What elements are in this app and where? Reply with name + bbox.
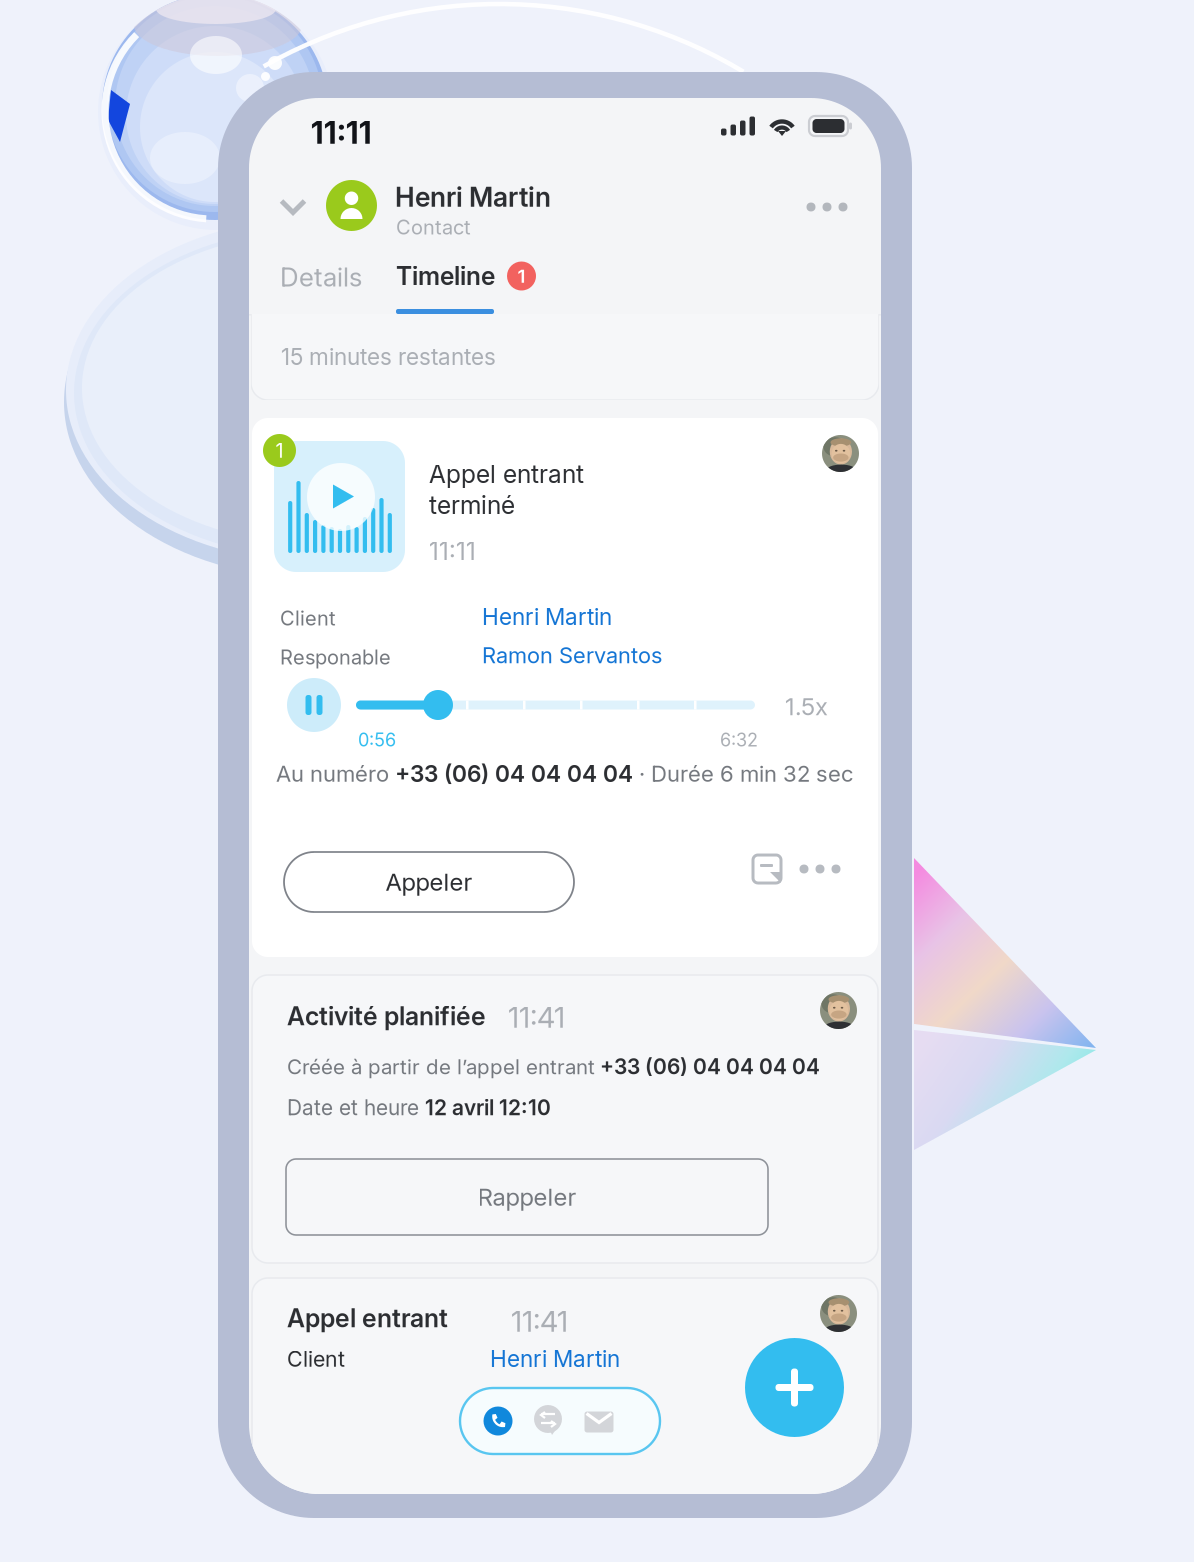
staticText: Durée 6 min 32 sec bbox=[651, 760, 853, 787]
staticText: 1 bbox=[517, 265, 525, 287]
button[interactable]: Réduire bbox=[269, 182, 317, 232]
staticText: Activité planifiée bbox=[287, 1001, 486, 1031]
staticText: 11:41 bbox=[508, 1000, 565, 1035]
staticText: Appeler bbox=[385, 867, 472, 896]
button[interactable]: Appeler bbox=[476, 1399, 520, 1443]
staticText: Contact bbox=[396, 215, 471, 239]
staticText: 1.5x bbox=[785, 692, 828, 721]
staticText: Client bbox=[287, 1346, 345, 1372]
staticText: Au numéro bbox=[276, 760, 395, 787]
staticText: 15 minutes restantes bbox=[281, 343, 496, 370]
staticText: Rappeler bbox=[477, 1182, 576, 1211]
staticText: Date et heure bbox=[287, 1095, 425, 1120]
button[interactable]: Plus d'options bbox=[792, 846, 848, 892]
staticText: Henri Martin bbox=[395, 181, 551, 213]
button[interactable]: Ajouter bbox=[745, 1338, 844, 1437]
staticText: 1 bbox=[275, 438, 283, 463]
staticText: Henri Martin bbox=[490, 1345, 620, 1372]
staticText: Créée à partir de l’appel entrant bbox=[287, 1054, 595, 1079]
button[interactable]: Details bbox=[267, 251, 375, 303]
staticText: 11:41 bbox=[511, 1304, 568, 1339]
staticText: Timeline bbox=[396, 261, 495, 291]
staticText: 12 avril 12:10 bbox=[425, 1095, 551, 1120]
staticText: 0:56 bbox=[358, 729, 396, 751]
staticText: +33 (06) 04 04 04 04 bbox=[395, 760, 633, 787]
staticText: terminé bbox=[429, 490, 515, 520]
staticText: 11:11 bbox=[311, 114, 372, 151]
staticText: Appel entrant bbox=[429, 459, 584, 489]
staticText: · bbox=[633, 760, 651, 787]
button[interactable]: Timeline bbox=[396, 250, 556, 302]
button[interactable]: Email bbox=[577, 1400, 621, 1444]
button[interactable]: Rappeler bbox=[286, 1159, 768, 1235]
staticText: Ramon Servantos bbox=[482, 642, 662, 668]
staticText: Client bbox=[280, 606, 336, 630]
staticText: +33 (06) 04 04 04 04 bbox=[600, 1054, 820, 1079]
staticText: Appel entrant bbox=[287, 1303, 448, 1333]
staticText: Responable bbox=[280, 645, 391, 669]
staticText: 11:11 bbox=[429, 536, 476, 566]
staticText: Details bbox=[280, 261, 362, 293]
button[interactable]: Message bbox=[526, 1398, 570, 1442]
button[interactable]: Appeler bbox=[284, 852, 574, 912]
button[interactable]: Note bbox=[744, 846, 790, 892]
staticText: Henri Martin bbox=[482, 603, 612, 630]
button[interactable]: Plus bbox=[800, 183, 854, 231]
staticText: 6:32 bbox=[720, 729, 758, 751]
